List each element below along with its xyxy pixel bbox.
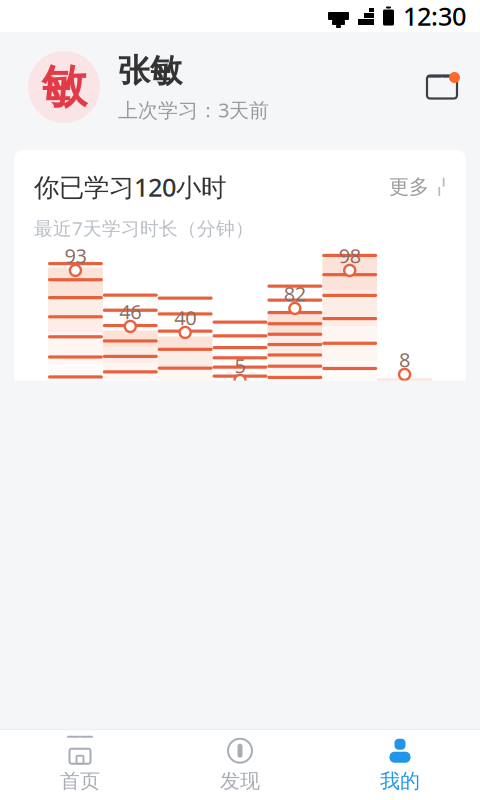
staticText: 张敏 — [118, 51, 182, 90]
staticText: 你已学习120小时 — [34, 170, 226, 204]
button[interactable]: 头像 — [28, 51, 100, 123]
staticText: 我的收藏 — [78, 748, 178, 779]
staticText: 更多 — [389, 174, 429, 199]
staticText: 93 — [64, 242, 86, 269]
staticText: 40 — [174, 304, 196, 331]
staticText: 首页 — [60, 769, 100, 793]
staticText: 98 — [339, 242, 361, 269]
staticText: 46 — [119, 298, 141, 325]
staticText: 敏 — [41, 59, 86, 115]
staticText: 上次学习：3天前 — [118, 96, 269, 123]
button[interactable]: 你已学习120小时 — [14, 150, 466, 204]
staticText: 我的 — [380, 769, 420, 793]
staticText: 8 — [399, 346, 410, 373]
button[interactable]: 首页 — [0, 731, 160, 799]
staticText: 82 — [284, 280, 306, 307]
staticText: 12:30 — [403, 0, 466, 33]
button[interactable]: 我的 — [320, 731, 480, 799]
button[interactable]: 我的收藏 — [0, 723, 480, 800]
staticText: 最近7天学习时长（分钟） — [34, 216, 254, 240]
button[interactable]: 消息 — [420, 65, 464, 109]
button[interactable]: 发现 — [160, 731, 320, 799]
staticText: 5 — [234, 352, 245, 379]
staticText: 发现 — [220, 769, 260, 793]
